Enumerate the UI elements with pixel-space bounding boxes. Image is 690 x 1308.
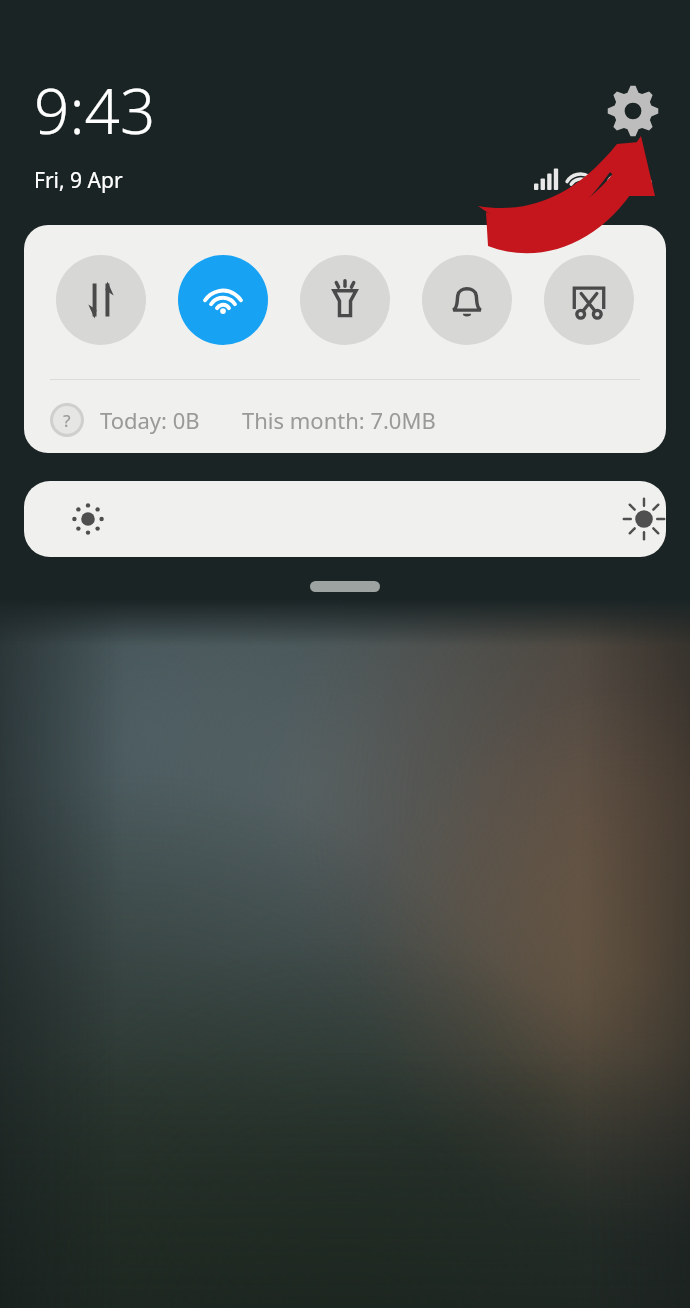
button[interactable]: Settings xyxy=(606,84,660,138)
staticText: This month: 7.0MB xyxy=(242,405,436,435)
staticText: ? xyxy=(63,409,71,432)
button[interactable]: Screenshot xyxy=(544,255,634,345)
staticText: 9:43 xyxy=(34,68,156,152)
button[interactable]: ? xyxy=(50,397,436,443)
button[interactable]: Mobile data xyxy=(56,255,146,345)
button[interactable]: Flashlight xyxy=(300,255,390,345)
button[interactable]: Expand panel xyxy=(310,581,380,592)
staticText: Fri, 9 Apr xyxy=(34,166,123,195)
button[interactable]: Ringer xyxy=(422,255,512,345)
button[interactable]: Wi-Fi xyxy=(178,255,268,345)
button[interactable]: Brightness xyxy=(24,481,666,557)
staticText: Today: 0B xyxy=(100,405,200,435)
